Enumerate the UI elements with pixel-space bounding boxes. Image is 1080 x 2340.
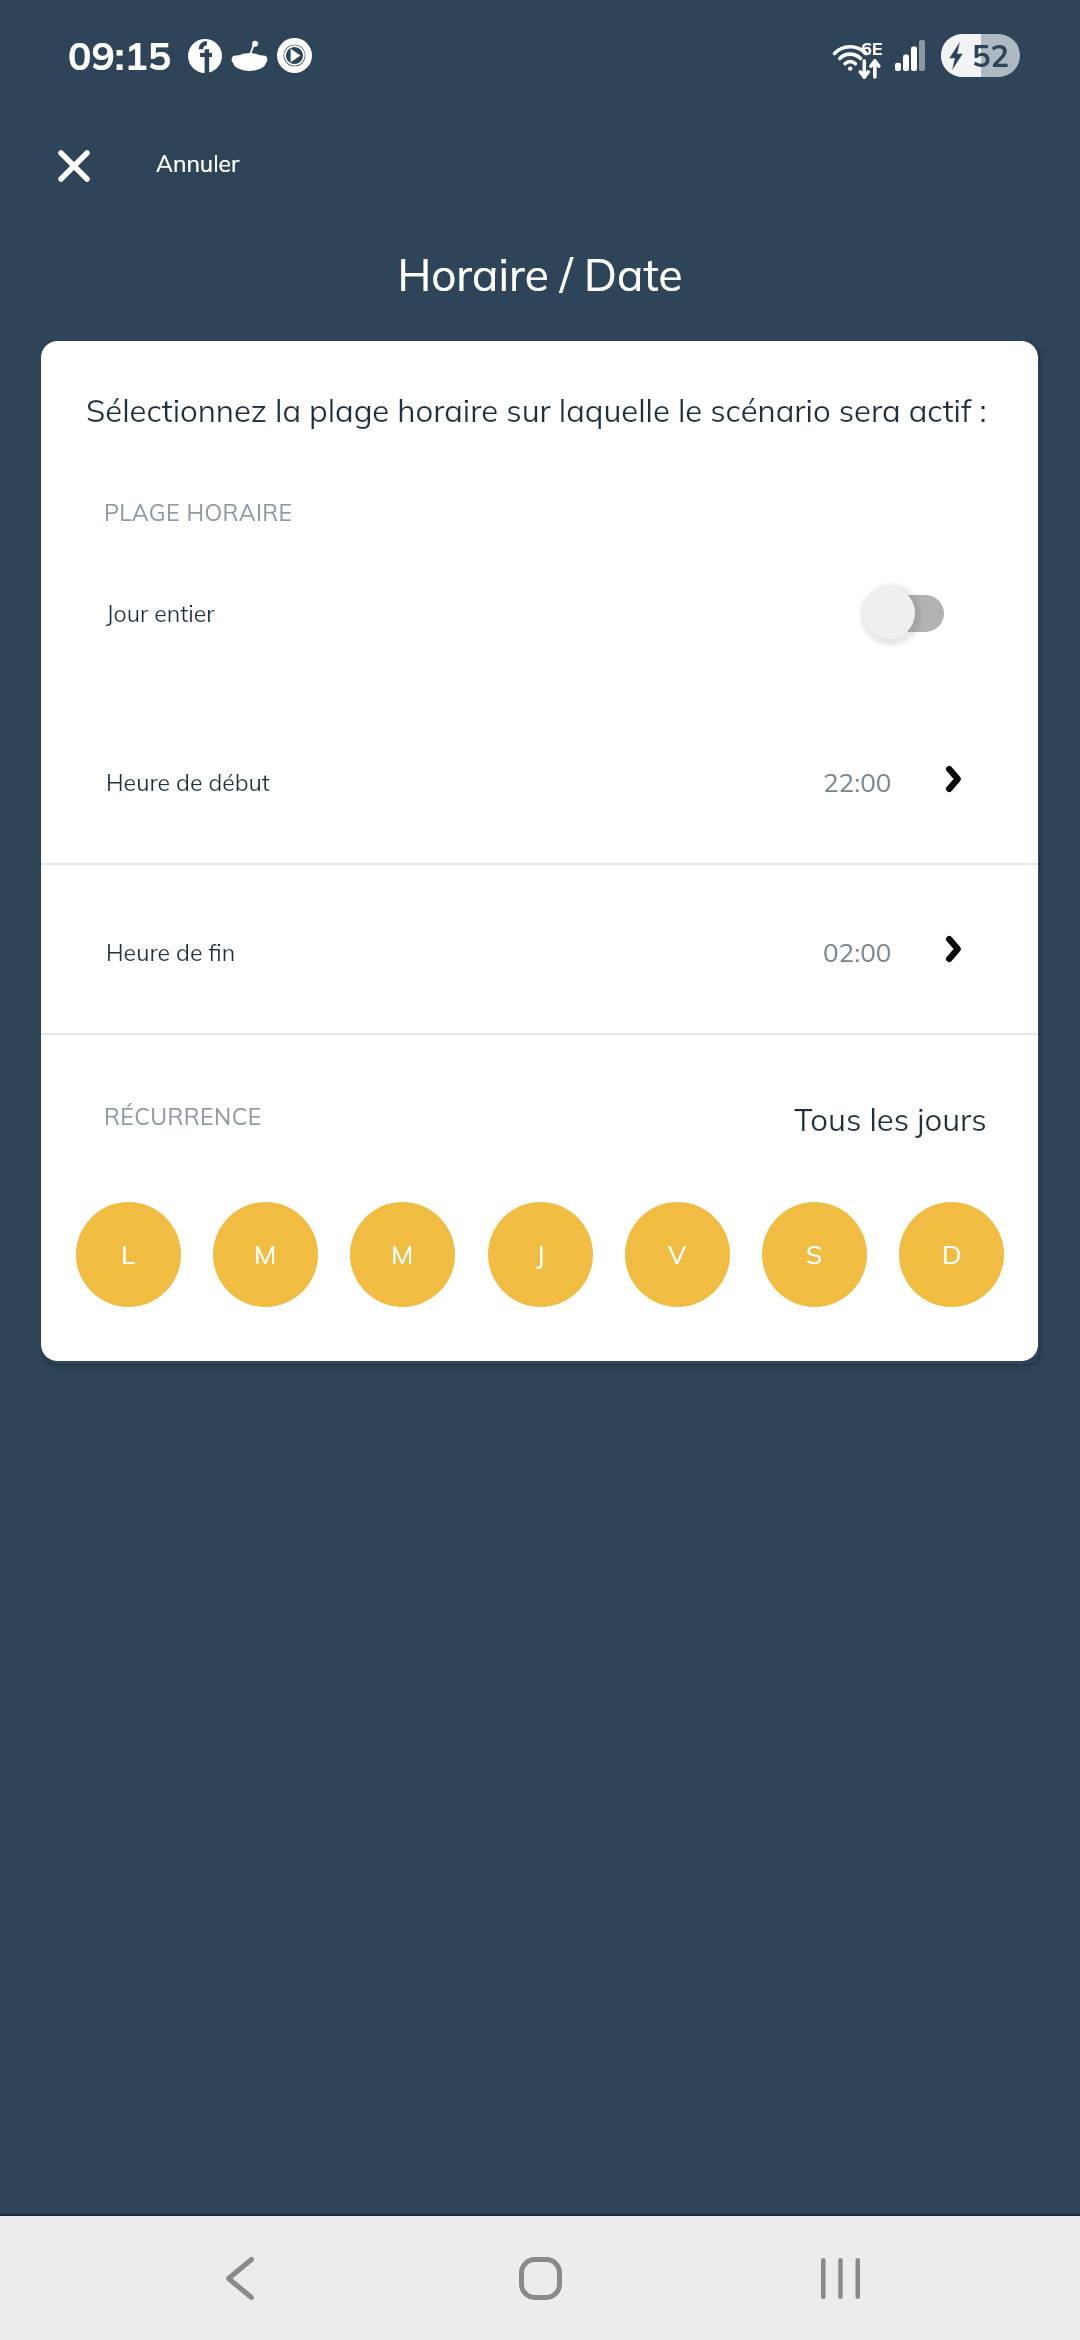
button[interactable]: S — [762, 1202, 867, 1307]
button[interactable]: Applications récentes — [780, 2218, 900, 2338]
button[interactable]: Accueil — [480, 2218, 600, 2338]
staticText: Heure de début — [106, 768, 270, 797]
staticText: PLAGE HORAIRE — [104, 498, 293, 527]
button[interactable]: RÉCURRENCE — [41, 1081, 1038, 1151]
button[interactable]: L — [76, 1202, 181, 1307]
staticText: Jour entier — [106, 599, 215, 628]
staticText: 09:15 — [68, 31, 172, 80]
staticText: M — [391, 1238, 414, 1271]
staticText: 52 — [972, 36, 1010, 75]
staticText: V — [668, 1238, 687, 1271]
button[interactable]: J — [488, 1202, 593, 1307]
staticText: Sélectionnez la plage horaire sur laquel… — [86, 391, 987, 430]
staticText: 6E — [861, 37, 883, 60]
button[interactable]: Heure de début — [41, 737, 1038, 827]
button[interactable]: Jour entier — [41, 569, 1038, 657]
button[interactable]: Retour — [180, 2218, 300, 2338]
button[interactable]: Jour entier — [862, 584, 944, 642]
staticText: RÉCURRENCE — [104, 1102, 262, 1131]
staticText: D — [942, 1238, 962, 1271]
staticText: 22:00 — [823, 766, 892, 799]
button[interactable]: D — [899, 1202, 1004, 1307]
button[interactable]: Annuler — [156, 129, 240, 197]
button[interactable]: M — [213, 1202, 318, 1307]
staticText: 02:00 — [823, 936, 892, 969]
button[interactable]: Heure de fin — [41, 907, 1038, 997]
staticText: Heure de fin — [106, 938, 236, 967]
button[interactable]: M — [350, 1202, 455, 1307]
button[interactable]: V — [625, 1202, 730, 1307]
staticText: Annuler — [156, 149, 240, 178]
staticText: L — [121, 1238, 136, 1271]
staticText: Tous les jours — [794, 1100, 987, 1139]
staticText: J — [536, 1238, 545, 1271]
staticText: M — [254, 1238, 277, 1271]
staticText: S — [806, 1238, 823, 1271]
staticText: Horaire / Date — [397, 247, 683, 302]
button[interactable]: Fermer — [40, 132, 108, 200]
